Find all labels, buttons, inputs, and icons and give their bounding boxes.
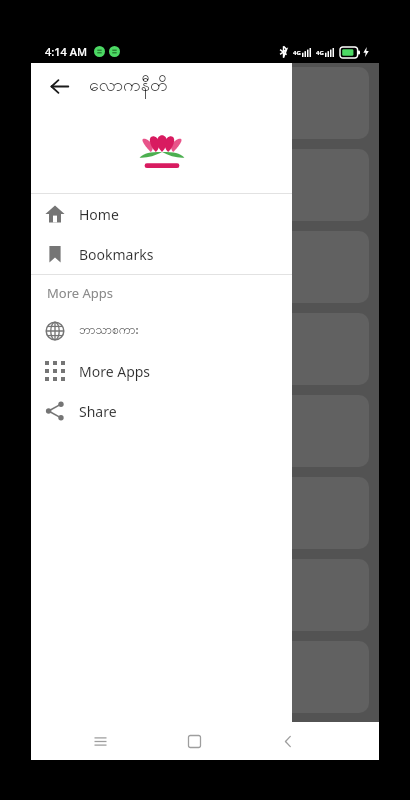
- button[interactable]: [39, 559, 369, 631]
- staticText: ဘာသာစကား: [79, 322, 139, 340]
- button[interactable]: ဘာသာစကား: [31, 311, 292, 351]
- staticText: 4G: [316, 49, 324, 57]
- button[interactable]: Recent apps: [81, 722, 119, 760]
- button[interactable]: Bookmarks: [31, 234, 292, 274]
- staticText: Home: [79, 205, 119, 224]
- staticText: Share: [79, 402, 117, 421]
- staticText: 4G: [293, 49, 301, 57]
- button[interactable]: [39, 231, 369, 303]
- button[interactable]: [39, 641, 369, 713]
- staticText: 4:14 AM: [45, 44, 88, 59]
- button[interactable]: App logo: [134, 123, 190, 179]
- staticText: More Apps: [47, 284, 114, 302]
- button[interactable]: [39, 477, 369, 549]
- button[interactable]: [39, 395, 369, 467]
- button[interactable]: Home: [175, 722, 213, 760]
- button[interactable]: [39, 149, 369, 221]
- button[interactable]: [39, 67, 369, 139]
- button[interactable]: Home: [31, 194, 292, 234]
- button[interactable]: Back: [39, 66, 79, 106]
- staticText: More Apps: [79, 362, 151, 381]
- button[interactable]: Share: [31, 391, 292, 431]
- staticText: Bookmarks: [79, 245, 154, 264]
- button[interactable]: More Apps: [31, 351, 292, 391]
- button[interactable]: [39, 313, 369, 385]
- staticText: လောကနီတိ: [89, 73, 168, 100]
- button[interactable]: Back: [269, 722, 307, 760]
